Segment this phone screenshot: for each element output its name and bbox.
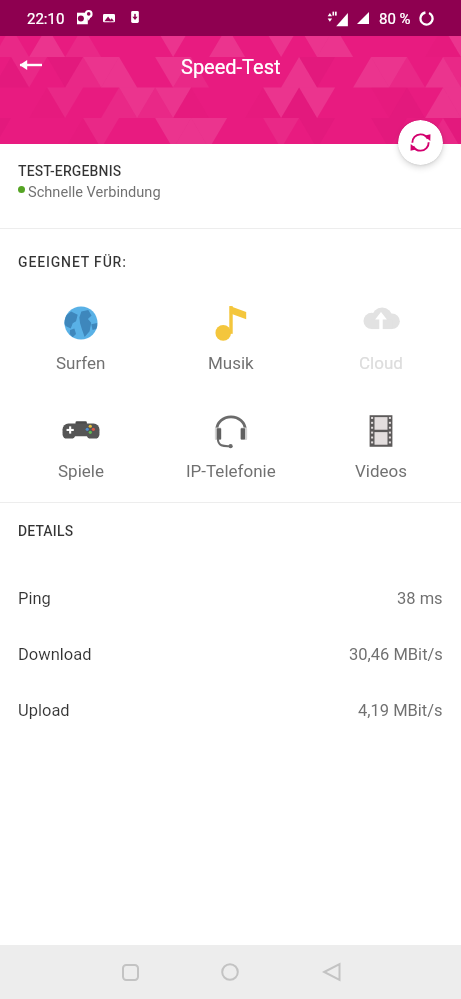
staticText: Musik — [208, 353, 254, 373]
staticText: Download — [18, 645, 92, 664]
button[interactable]: Zurück — [9, 43, 53, 87]
button[interactable]: Spiele — [5, 412, 156, 481]
staticText: Ping — [18, 589, 51, 608]
button[interactable]: IP-Telefonie — [156, 412, 306, 481]
button[interactable]: Videos — [306, 412, 456, 481]
staticText: Cloud — [359, 353, 403, 373]
button[interactable]: Ping — [0, 578, 461, 618]
button[interactable]: Surfen — [5, 304, 156, 373]
staticText: Surfen — [56, 353, 106, 373]
staticText: 30,46 MBit/s — [349, 645, 443, 664]
staticText: 38 ms — [397, 589, 443, 608]
staticText: 80 % — [379, 10, 411, 28]
button[interactable]: Startseite — [209, 951, 251, 993]
staticText: 4,19 MBit/s — [358, 701, 443, 720]
staticText: 22:10 — [27, 10, 65, 28]
staticText: Upload — [18, 701, 70, 720]
staticText: TEST-ERGEBNIS — [18, 163, 122, 179]
button[interactable]: Download — [0, 634, 461, 674]
staticText: Schnelle Verbindung — [28, 183, 161, 200]
staticText: GEEIGNET FÜR: — [18, 254, 127, 270]
staticText: IP-Telefonie — [186, 461, 276, 481]
staticText: Videos — [355, 461, 408, 481]
button[interactable]: Übersicht — [109, 951, 151, 993]
button[interactable]: Zurück — [311, 951, 353, 993]
button[interactable]: Upload — [0, 690, 461, 730]
button[interactable]: Cloud — [306, 304, 456, 373]
staticText: Speed-Test — [181, 55, 281, 78]
button[interactable]: Test wiederholen — [398, 120, 443, 165]
button[interactable]: Musik — [156, 304, 306, 373]
staticText: Spiele — [58, 461, 104, 481]
staticText: DETAILS — [18, 523, 74, 539]
